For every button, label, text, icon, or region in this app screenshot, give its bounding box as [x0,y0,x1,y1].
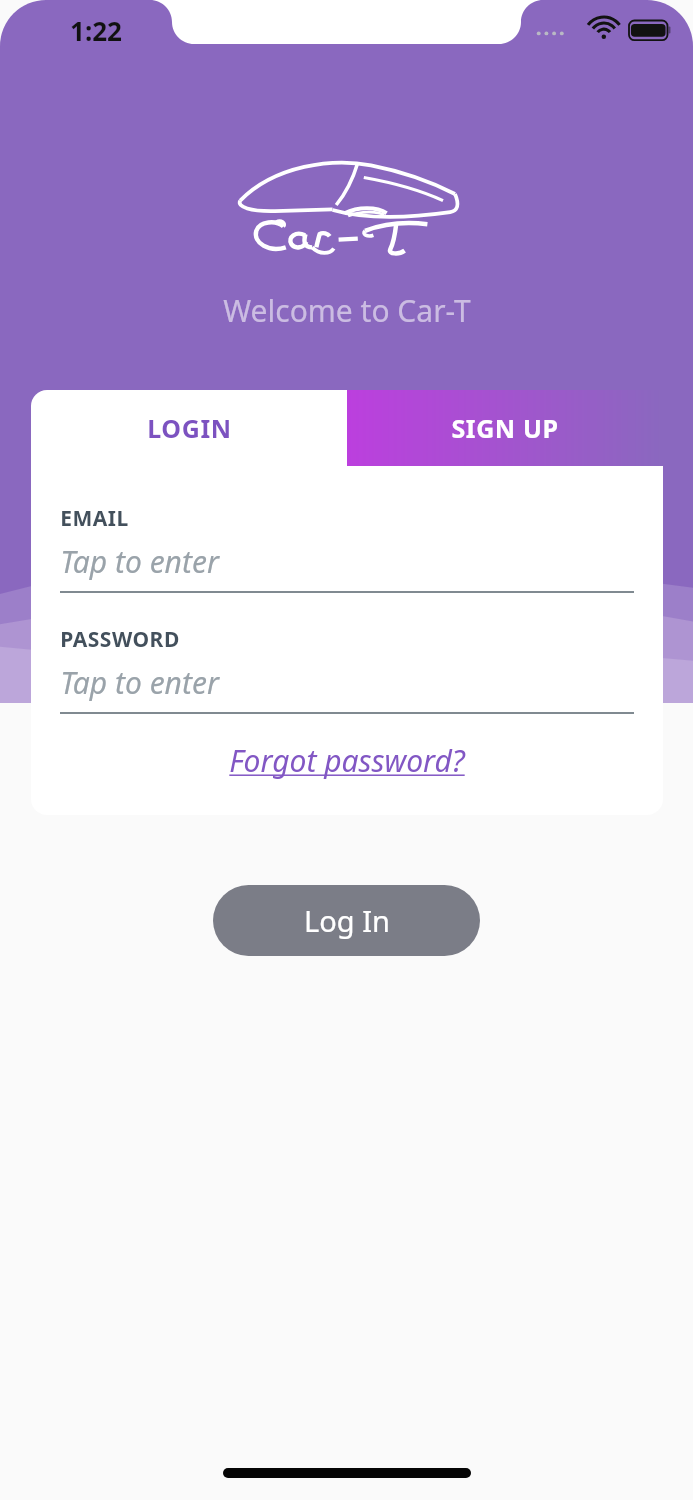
staticText: SIGN UP [451,411,559,445]
button[interactable]: Log In [213,885,480,956]
button[interactable]: Forgot password? [223,736,471,785]
staticText: Welcome to Car-T [223,290,471,331]
staticText: EMAIL [60,504,129,533]
staticText: Tap to enter [60,662,219,703]
staticText: Forgot password? [229,740,465,781]
button[interactable]: PASSWORD [60,625,634,714]
button[interactable]: LOGIN [31,390,347,466]
staticText: LOGIN [147,411,232,445]
staticText: 1:22 [70,13,122,48]
button[interactable]: SIGN UP [347,390,663,466]
staticText: PASSWORD [60,625,180,654]
staticText: Log In [304,901,390,940]
button[interactable]: EMAIL [60,504,634,593]
staticText: Tap to enter [60,541,219,582]
